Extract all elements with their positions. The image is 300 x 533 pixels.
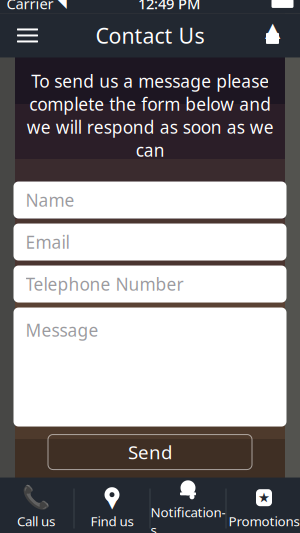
button[interactable]: Notifications xyxy=(150,477,225,533)
staticText: ★ xyxy=(258,490,270,505)
staticText: 📞 xyxy=(22,485,50,511)
staticText: Send xyxy=(128,440,172,464)
staticText: To send us a message please complete the… xyxy=(26,69,273,162)
staticText: Carrier xyxy=(6,0,53,13)
staticText: Find us xyxy=(90,512,133,530)
staticText: ▲ xyxy=(265,18,280,41)
staticText: ▼ xyxy=(106,494,117,511)
button[interactable]: ★ xyxy=(226,477,300,533)
staticText: Message xyxy=(25,318,98,341)
button[interactable]: Send xyxy=(48,434,252,469)
staticText: 12:49 PM xyxy=(138,0,200,13)
button[interactable]: Menu xyxy=(5,13,49,57)
staticText: Notifications xyxy=(150,503,225,533)
staticText: Promotions xyxy=(228,512,299,530)
button[interactable]: Home xyxy=(250,13,294,57)
staticText: ◥ xyxy=(53,0,66,10)
button[interactable]: 📞 xyxy=(0,477,73,533)
button[interactable]: ▼ xyxy=(74,477,149,533)
staticText: Email xyxy=(25,230,69,253)
staticText: Name xyxy=(25,188,74,211)
staticText: Call us xyxy=(17,512,55,530)
staticText: Contact Us xyxy=(95,21,204,50)
staticText: Telephone Number xyxy=(25,272,183,295)
